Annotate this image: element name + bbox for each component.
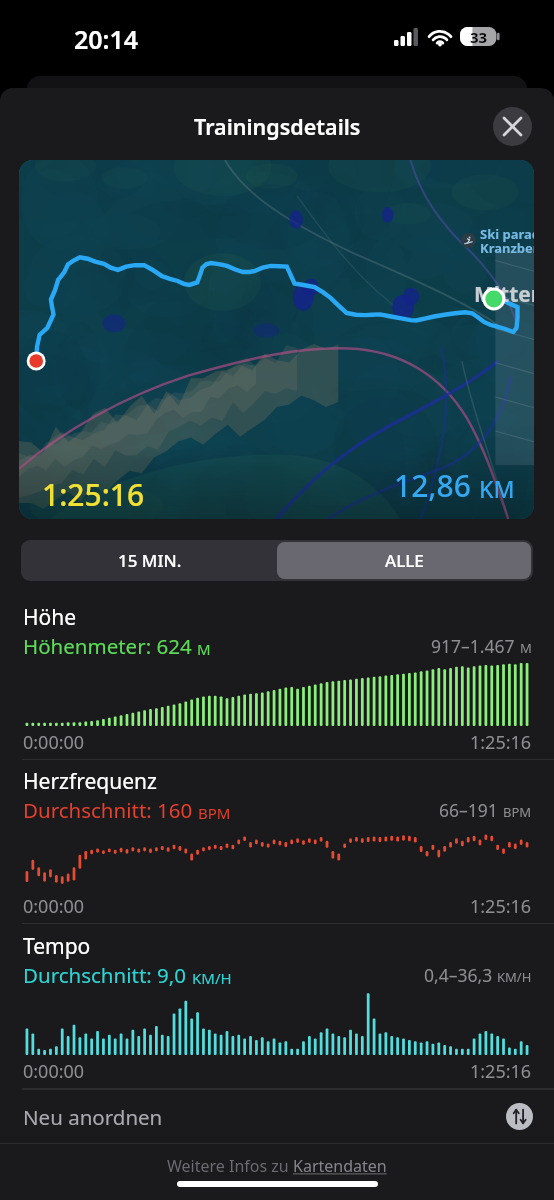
staticText: 0:00:00 [23, 894, 85, 919]
staticText: 1:25:16 [470, 730, 532, 755]
staticText: 0:00:00 [23, 1059, 85, 1084]
staticText: 33 [470, 27, 488, 46]
staticText: KM/H [192, 968, 232, 988]
button[interactable]: Schließen [493, 107, 532, 146]
staticText: BPM [198, 803, 231, 823]
staticText: ALLE [385, 549, 424, 572]
staticText: Durchschnitt: 9,0 [23, 961, 192, 989]
button[interactable]: ALLE [277, 542, 531, 579]
staticText: 1:25:16 [42, 474, 145, 515]
staticText: Kranzber [480, 239, 534, 257]
staticText: Herzfrequenz [23, 767, 157, 796]
staticText: Höhe [23, 603, 77, 632]
staticText: KM/H [497, 968, 532, 986]
staticText: 66–191 [439, 798, 503, 822]
staticText: 917–1.467 [431, 634, 520, 658]
staticText: 12,86 [394, 465, 479, 506]
staticText: 1:25:16 [470, 894, 532, 919]
staticText: Weitere Infos zu [167, 1155, 293, 1177]
button[interactable]: Neu anordnen [0, 1090, 554, 1143]
button[interactable]: Kartendaten [293, 1155, 387, 1177]
staticText: 20:14 [74, 22, 139, 56]
staticText: Durchschnitt: 160 [23, 796, 198, 824]
staticText: BPM [503, 803, 532, 821]
staticText: KM [479, 473, 515, 504]
staticText: Neu anordnen [23, 1103, 163, 1131]
staticText: 0,4–36,3 [424, 963, 497, 987]
staticText: Ski parad [480, 225, 534, 243]
staticText: M [520, 639, 532, 657]
staticText: Mitten [474, 280, 534, 309]
button[interactable]: 15 MIN. [23, 542, 277, 579]
staticText: 0:00:00 [23, 730, 85, 755]
staticText: 1:25:16 [470, 1059, 532, 1084]
staticText: 15 MIN. [118, 549, 182, 572]
staticText: M [197, 639, 211, 659]
staticText: Trainingsdetails [194, 112, 361, 141]
button[interactable]: Karte [19, 160, 534, 519]
staticText: Höhenmeter: 624 [23, 632, 197, 660]
staticText: Tempo [23, 932, 91, 961]
